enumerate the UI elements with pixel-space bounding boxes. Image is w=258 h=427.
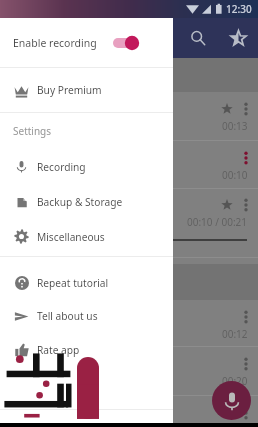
button[interactable]: 00:20 — [0, 347, 258, 396]
button[interactable]: Rate app — [0, 333, 173, 366]
staticText: 12:30 — [226, 2, 252, 16]
button[interactable] — [0, 396, 258, 427]
staticText: Rate app — [37, 343, 80, 357]
button[interactable]: 00:10 — [0, 141, 258, 189]
staticText: Settings — [13, 124, 52, 138]
button[interactable]: Search — [178, 18, 218, 58]
staticText: Miscellaneous — [37, 230, 105, 244]
button[interactable]: Buy Premium — [0, 68, 173, 112]
staticText: Recording — [37, 160, 86, 174]
staticText: 00:12 — [222, 327, 248, 341]
button[interactable]: 00:10 / 00:21 — [0, 189, 258, 258]
staticText: Backup & Storage — [37, 195, 123, 209]
staticText: 00:20 — [222, 374, 248, 388]
staticText: Enable recording — [13, 36, 97, 50]
staticText: 00:13 — [222, 119, 248, 133]
button[interactable]: 00:12 — [0, 300, 258, 347]
button[interactable]: Repeat tutorial — [0, 266, 173, 299]
staticText: Repeat tutorial — [37, 276, 109, 290]
button[interactable]: Record — [212, 381, 251, 420]
staticText: 00:10 — [222, 168, 248, 182]
button[interactable]: Favorites — [218, 18, 258, 58]
button[interactable]: Backup & Storage — [0, 184, 173, 219]
button[interactable]: 00:13 — [0, 92, 258, 141]
staticText: 00:10 / 00:21 — [187, 215, 248, 229]
button[interactable]: Tell about us — [0, 299, 173, 333]
button[interactable]: Recording — [0, 149, 173, 184]
button[interactable]: Miscellaneous — [0, 219, 173, 254]
staticText: Tell about us — [37, 309, 98, 323]
staticText: Buy Premium — [37, 83, 102, 97]
button[interactable]: Enable recording — [0, 18, 173, 67]
